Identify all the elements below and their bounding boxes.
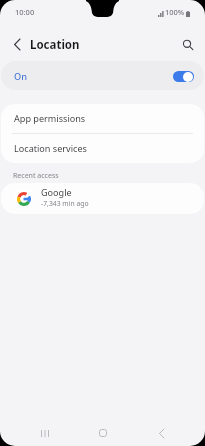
button[interactable]: Google <box>1 183 204 214</box>
button[interactable]: Back <box>5 33 28 56</box>
staticText: -7,343 min ago <box>41 199 89 208</box>
staticText: 100% <box>165 7 185 17</box>
button[interactable]: Search <box>176 33 199 56</box>
staticText: On <box>14 70 27 83</box>
button[interactable]: Recents <box>34 422 56 444</box>
staticText: Recent access <box>13 171 59 181</box>
staticText: Location services <box>14 142 87 154</box>
button[interactable]: Back <box>150 422 172 444</box>
staticText: Location <box>30 37 80 53</box>
button[interactable]: Home <box>92 422 114 444</box>
staticText: Google <box>41 186 72 198</box>
staticText: App permissions <box>14 112 86 124</box>
button[interactable]: On <box>1 61 204 90</box>
staticText: 10:00 <box>15 7 35 17</box>
button[interactable]: App permissions <box>1 104 204 133</box>
button[interactable]: Location services <box>1 134 204 163</box>
